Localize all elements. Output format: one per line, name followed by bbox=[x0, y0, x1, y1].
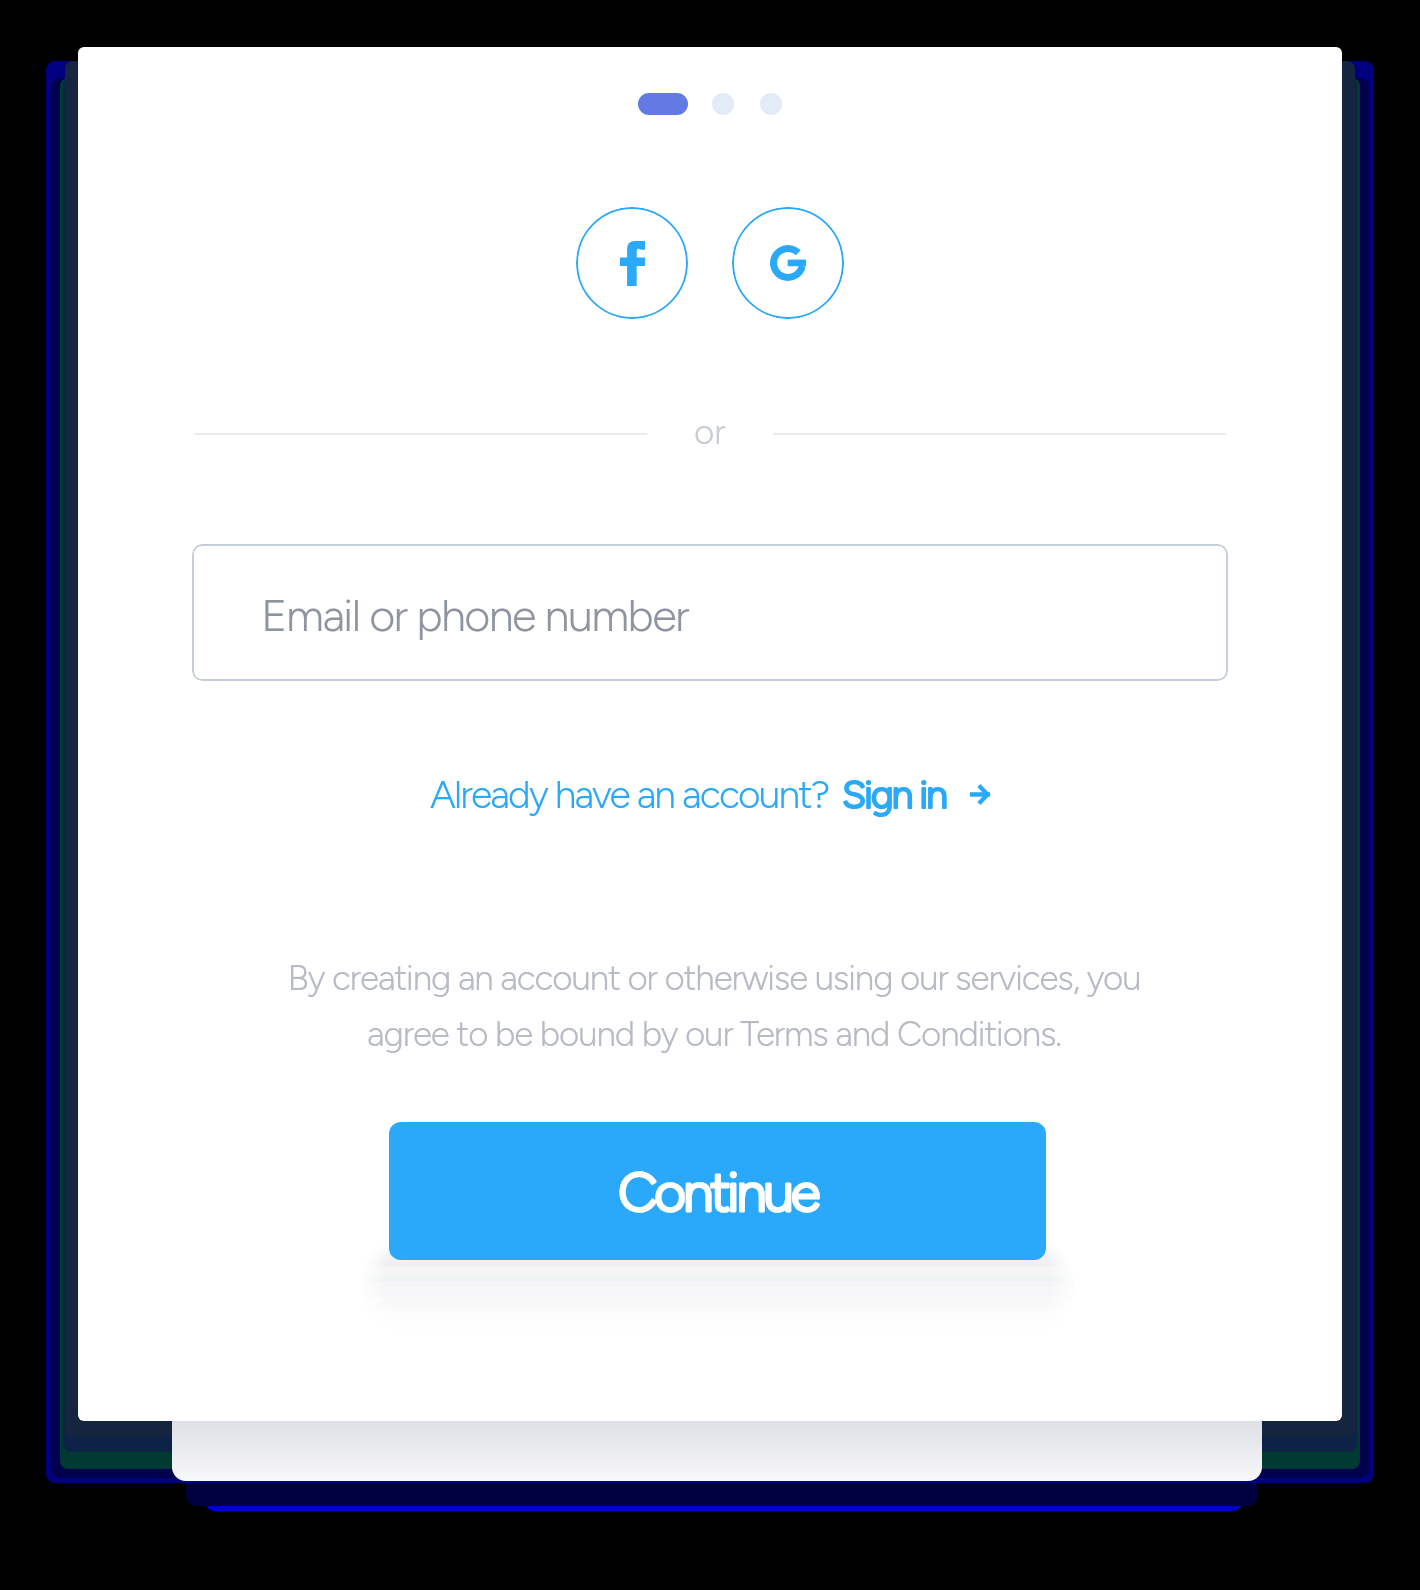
staticText: or bbox=[694, 411, 726, 453]
staticText: Already have an account? bbox=[430, 771, 829, 818]
button[interactable]: Page 3 bbox=[760, 93, 782, 115]
button[interactable]: Already have an account? bbox=[420, 763, 1000, 826]
button[interactable]: Page 2 bbox=[712, 93, 734, 115]
staticText: Continue bbox=[618, 1159, 818, 1225]
button[interactable]: Email or phone number bbox=[192, 544, 1228, 681]
button[interactable]: Page 1 bbox=[638, 93, 688, 115]
staticText: Continue bbox=[618, 1159, 818, 1225]
button[interactable]: Continue with Facebook bbox=[576, 207, 688, 319]
staticText: Email or phone number bbox=[261, 588, 688, 642]
staticText: Sign in bbox=[842, 771, 946, 818]
staticText: Sign in bbox=[842, 771, 946, 818]
staticText: By creating an account or otherwise usin… bbox=[274, 957, 1154, 1054]
button[interactable]: Continue bbox=[389, 1122, 1046, 1260]
button[interactable]: Continue with Google bbox=[732, 207, 844, 319]
